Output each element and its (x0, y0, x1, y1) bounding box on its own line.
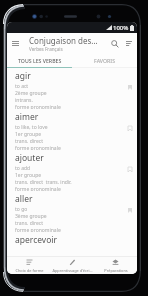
button[interactable]: Favorite (123, 150, 137, 191)
button[interactable]: Favorite (123, 68, 137, 109)
staticText: 2ème groupe (15, 90, 47, 97)
staticText: trans. direct (15, 220, 44, 227)
button[interactable]: Choix de forme (7, 257, 51, 274)
staticText: intrans. (15, 97, 33, 104)
staticText: to act (15, 83, 29, 90)
staticText: Conjugaison des... (29, 35, 98, 46)
button[interactable]: Favorite (123, 109, 137, 150)
staticText: trans. direct (15, 138, 44, 145)
button[interactable]: Favorite (123, 191, 137, 232)
staticText: Choix de forme (15, 268, 44, 273)
button[interactable]: agir (7, 68, 137, 109)
staticText: agir (15, 70, 31, 82)
staticText: aimer (15, 111, 39, 123)
staticText: forme pronominale (15, 104, 61, 109)
staticText: Préparations (104, 268, 128, 273)
staticText: aller (15, 193, 33, 205)
staticText: 1er groupe (15, 131, 42, 138)
staticText: forme pronominale (15, 145, 61, 150)
staticText: forme pronominale (15, 186, 61, 191)
staticText: to go (15, 206, 28, 213)
button[interactable]: Sort (122, 37, 135, 50)
staticText: TOUS LES VERBES (18, 57, 62, 64)
staticText: to add (15, 165, 31, 172)
staticText: FAVORIS (94, 57, 115, 64)
staticText: 3ème groupe (15, 213, 47, 220)
staticText: trans. direct trans. indir. (15, 179, 72, 186)
staticText: 100% (113, 24, 129, 32)
staticText: Apprentissage d'écri... (52, 268, 93, 273)
button[interactable]: apercevoir (7, 232, 137, 252)
button[interactable]: TOUS LES VERBES (7, 53, 72, 67)
staticText: apercevoir (15, 234, 57, 246)
button[interactable]: Menu (7, 35, 23, 51)
button[interactable]: aimer (7, 109, 137, 150)
staticText: Verbes Français (29, 46, 63, 52)
button[interactable]: Apprentissage d'écri... (51, 257, 94, 274)
button[interactable]: Search (107, 36, 122, 51)
button[interactable]: Préparations (94, 257, 137, 274)
button[interactable]: FAVORIS (72, 53, 137, 67)
staticText: forme pronominale (15, 227, 61, 232)
staticText: to like, to love (15, 124, 48, 131)
staticText: 1er groupe (15, 172, 42, 179)
button[interactable]: aller (7, 191, 137, 232)
staticText: ajouter (15, 152, 44, 164)
button[interactable]: ajouter (7, 150, 137, 191)
